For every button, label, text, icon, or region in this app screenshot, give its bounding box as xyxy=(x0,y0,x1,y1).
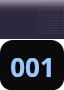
button[interactable]: 001 xyxy=(0,40,64,90)
staticText: 001 xyxy=(10,49,55,84)
